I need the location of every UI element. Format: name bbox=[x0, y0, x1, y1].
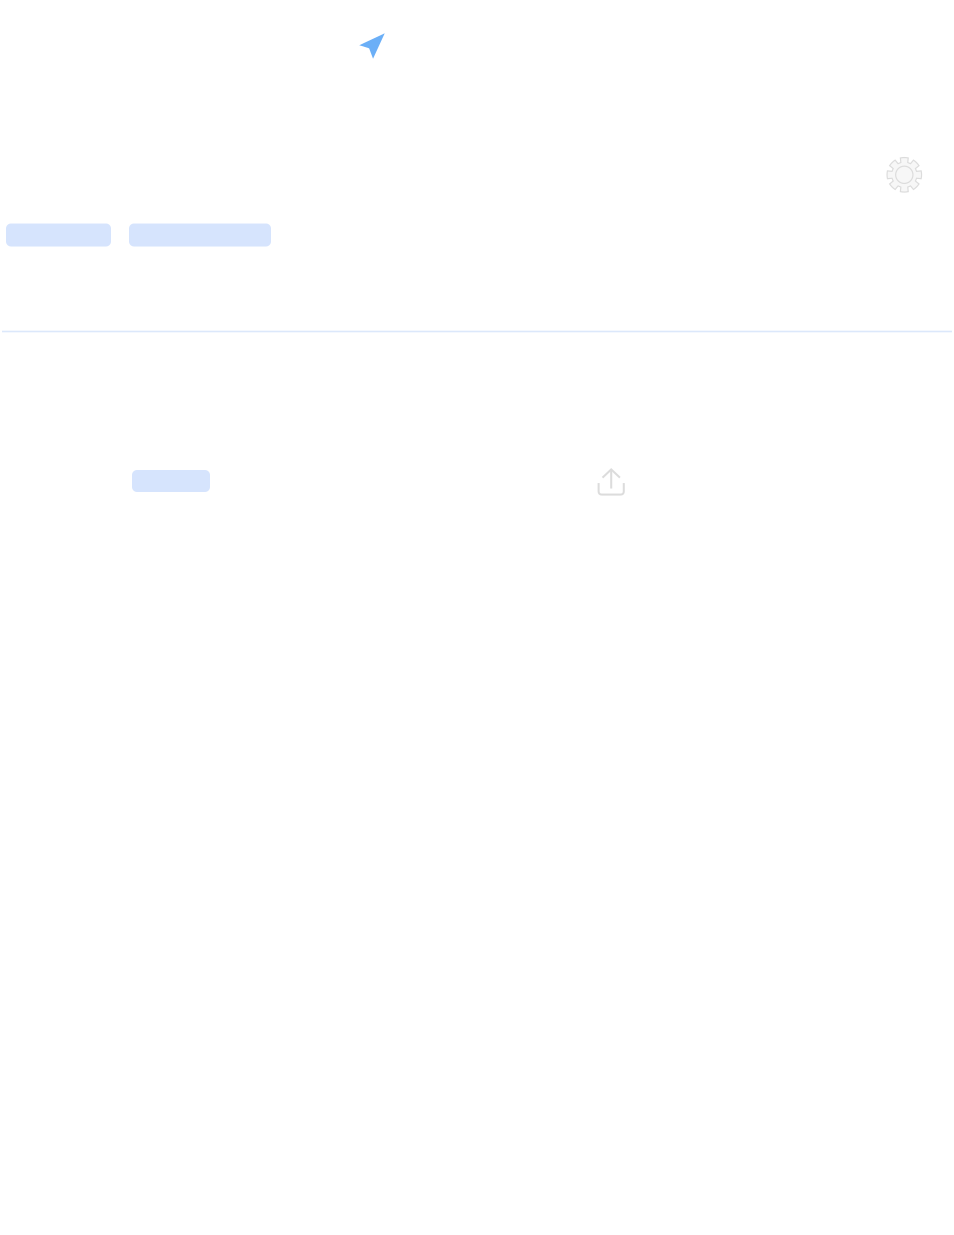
button[interactable]: Share bbox=[589, 460, 633, 504]
button[interactable]: Settings bbox=[882, 153, 926, 197]
button[interactable]: Current location bbox=[350, 24, 394, 68]
